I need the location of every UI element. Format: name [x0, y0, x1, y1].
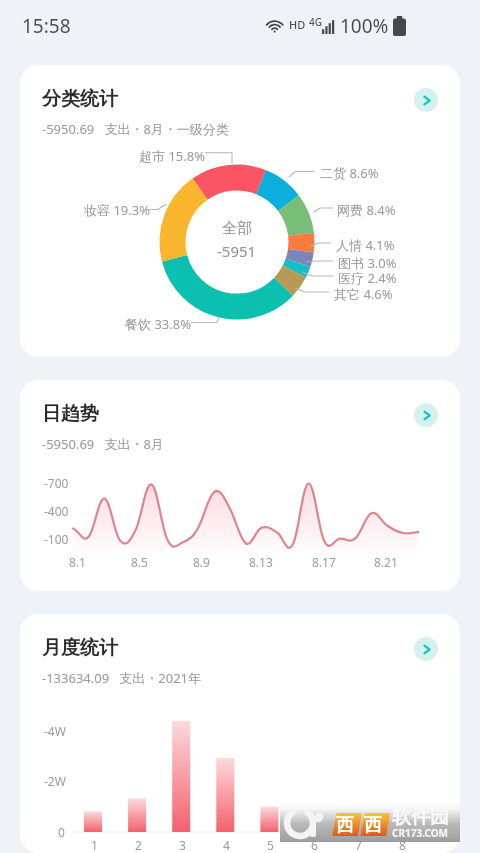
- staticText: 100%: [340, 13, 389, 39]
- staticText: 2: [135, 837, 142, 853]
- staticText: 8.9: [193, 554, 210, 570]
- staticText: 7: [355, 837, 362, 853]
- staticText: 8.1: [69, 554, 86, 570]
- button[interactable]: View details: [414, 637, 438, 661]
- button[interactable]: 分类统计: [20, 65, 460, 357]
- staticText: 月度统计: [42, 636, 118, 660]
- staticText: 餐饮 33.8%: [125, 315, 191, 333]
- staticText: 0: [58, 824, 65, 840]
- staticText: 超市 15.8%: [139, 147, 205, 165]
- staticText: 15:58: [22, 13, 71, 39]
- staticText: 4G: [309, 15, 322, 29]
- staticText: 8.5: [131, 554, 148, 570]
- staticText: -700: [44, 475, 69, 491]
- staticText: 3: [179, 837, 186, 853]
- staticText: CR173.COM: [392, 826, 449, 840]
- staticText: 分类统计: [42, 87, 118, 111]
- staticText: 西: [364, 814, 382, 837]
- staticText: 1: [91, 837, 98, 853]
- staticText: 4: [223, 837, 230, 853]
- button[interactable]: 月度统计: [20, 614, 460, 853]
- button[interactable]: 日趋势: [20, 380, 460, 591]
- staticText: 其它 4.6%: [334, 285, 393, 303]
- staticText: -5950.69 支出・8月・一级分类: [42, 120, 229, 138]
- staticText: -4W: [44, 723, 66, 739]
- staticText: 8.13: [249, 554, 273, 570]
- staticText: -133634.09 支出・2021年: [42, 669, 202, 687]
- staticText: -2W: [44, 773, 66, 789]
- staticText: 8.17: [312, 554, 336, 570]
- staticText: 医疗 2.4%: [338, 269, 397, 287]
- staticText: 人情 4.1%: [336, 236, 395, 254]
- staticText: -5950.69 支出・8月: [42, 435, 164, 453]
- staticText: 图书 3.0%: [338, 254, 397, 272]
- staticText: 软件园: [392, 805, 449, 829]
- staticText: 日趋势: [42, 402, 99, 426]
- button[interactable]: View details: [414, 403, 438, 427]
- staticText: 8.21: [374, 554, 398, 570]
- staticText: 全部: [222, 219, 252, 238]
- staticText: 二货 8.6%: [320, 164, 379, 182]
- staticText: 8: [399, 837, 406, 853]
- staticText: 网费 8.4%: [337, 201, 396, 219]
- staticText: -5951: [217, 241, 257, 261]
- staticText: 6: [311, 837, 318, 853]
- button[interactable]: View details: [414, 88, 438, 112]
- staticText: -400: [44, 503, 69, 519]
- staticText: HD: [289, 17, 306, 32]
- staticText: -100: [44, 531, 69, 547]
- staticText: 西: [336, 814, 354, 837]
- staticText: 妆容 19.3%: [84, 201, 150, 219]
- staticText: 5: [267, 837, 274, 853]
